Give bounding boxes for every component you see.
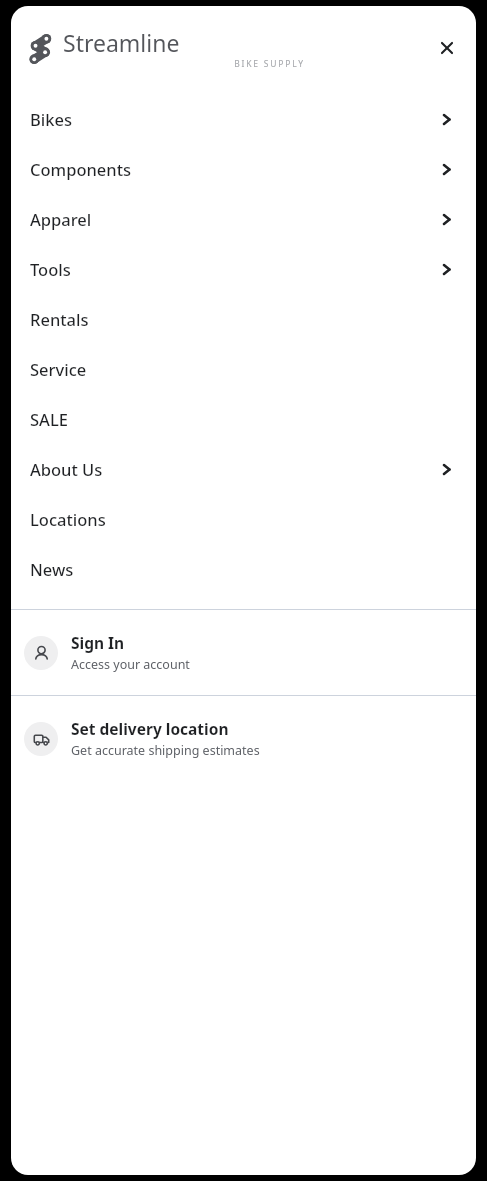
staticText: News [30, 558, 74, 580]
staticText: Get accurate shipping estimates [71, 742, 260, 759]
button[interactable]: Tools [11, 244, 476, 294]
staticText: Tools [30, 258, 71, 280]
staticText: BIKE SUPPLY [63, 58, 476, 70]
button[interactable]: Bikes [11, 94, 476, 144]
staticText: Components [30, 158, 131, 180]
button[interactable]: Streamline [24, 27, 476, 70]
other: Account [24, 636, 58, 670]
staticText: SALE [30, 408, 68, 430]
staticText: Apparel [30, 208, 92, 230]
staticText: Bikes [30, 108, 72, 130]
staticText: Set delivery location [71, 718, 229, 739]
staticText: About Us [30, 458, 103, 480]
staticText: Access your account [71, 656, 190, 673]
button[interactable]: Rentals [11, 294, 476, 344]
button[interactable]: Account [11, 610, 476, 695]
button[interactable]: SALE [11, 394, 476, 444]
button[interactable]: Locations [11, 494, 476, 544]
staticText: Rentals [30, 308, 89, 330]
other: Delivery [24, 722, 58, 756]
button[interactable]: Close menu [430, 31, 464, 65]
button[interactable]: Components [11, 144, 476, 194]
button[interactable]: News [11, 544, 476, 594]
button[interactable]: Service [11, 344, 476, 394]
staticText: Locations [30, 508, 106, 530]
button[interactable]: Apparel [11, 194, 476, 244]
button[interactable]: About Us [11, 444, 476, 494]
button[interactable]: Delivery [11, 696, 476, 781]
staticText: Sign In [71, 632, 125, 653]
staticText: Streamline [63, 27, 180, 58]
staticText: Service [30, 358, 87, 380]
